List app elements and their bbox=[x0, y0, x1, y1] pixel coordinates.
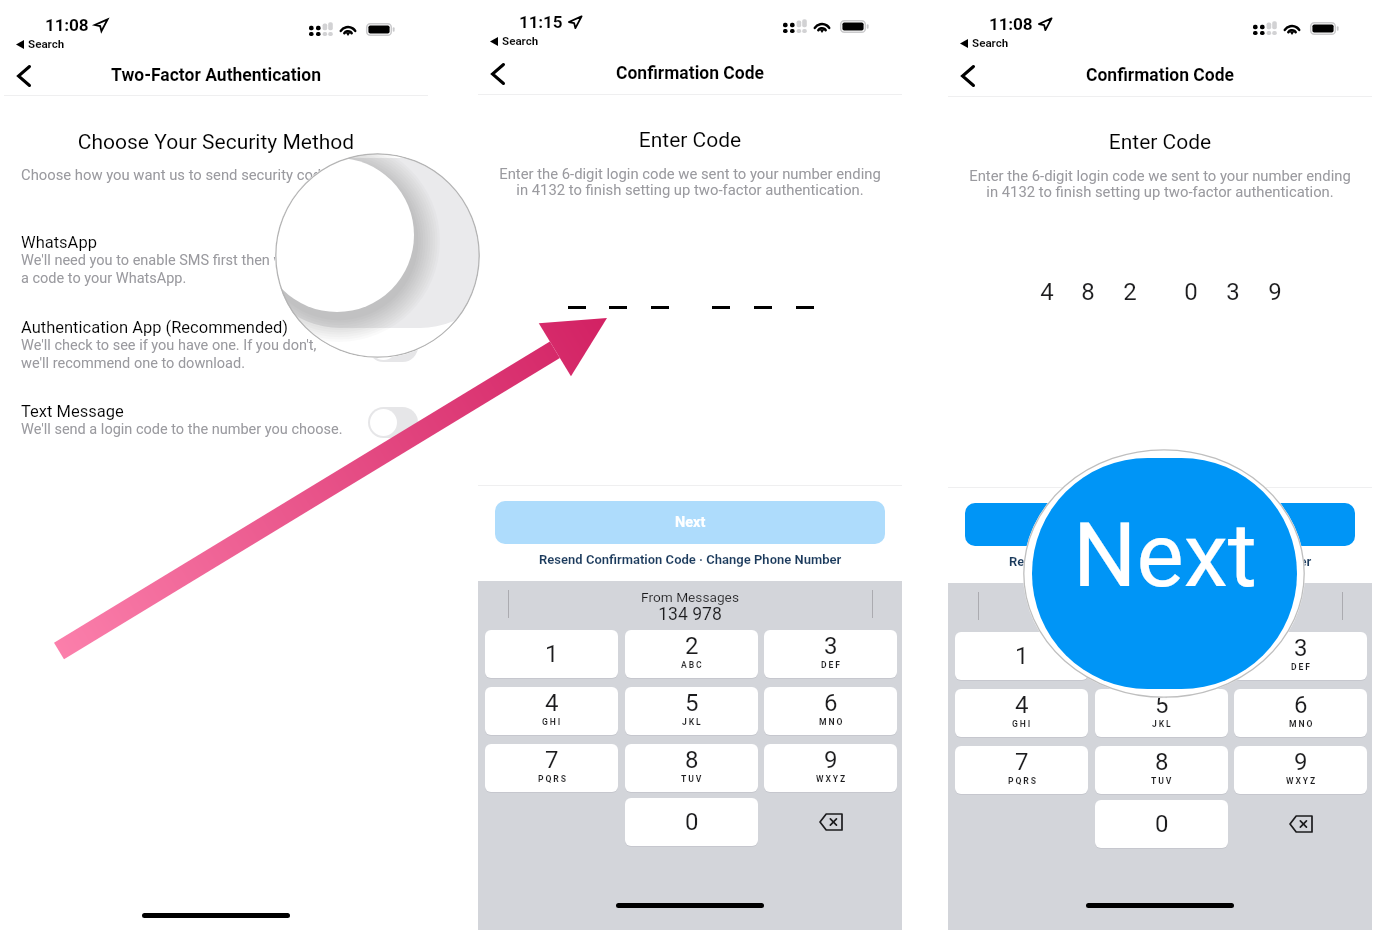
button[interactable]: 8 bbox=[1095, 746, 1228, 794]
staticText: Two-Factor Authentication bbox=[26, 65, 406, 86]
button[interactable]: Back bbox=[6, 58, 42, 94]
staticText: TUV bbox=[1151, 776, 1174, 786]
button[interactable]: 6 bbox=[1234, 689, 1367, 737]
staticText: MNO bbox=[819, 717, 845, 727]
staticText: Resend Confirmation Code · Change Phone … bbox=[539, 552, 842, 567]
staticText: 2 bbox=[1110, 278, 1150, 306]
button[interactable]: Back bbox=[480, 56, 516, 92]
staticText: 3 bbox=[1294, 634, 1308, 662]
staticText: 7 bbox=[1015, 748, 1029, 776]
button[interactable]: 0 bbox=[1095, 800, 1228, 848]
button[interactable]: Resend Confirmation Code · Change Phone … bbox=[960, 554, 1360, 569]
button[interactable]: 4 bbox=[955, 689, 1088, 737]
button[interactable]: WhatsApp bbox=[4, 229, 428, 290]
staticText: 5 bbox=[1155, 691, 1169, 719]
button[interactable]: 1 bbox=[955, 632, 1088, 680]
button[interactable]: 4 bbox=[485, 687, 618, 735]
staticText: DEF bbox=[1291, 662, 1312, 672]
button[interactable]: Toggle off bbox=[368, 407, 418, 438]
button[interactable]: 2 bbox=[1095, 632, 1228, 680]
staticText: 6 bbox=[824, 689, 838, 717]
staticText: 9 bbox=[824, 746, 838, 774]
staticText: 3 bbox=[1213, 278, 1253, 306]
staticText: Choose Your Security Method bbox=[6, 130, 426, 155]
button[interactable]: 9 bbox=[764, 744, 897, 792]
button[interactable]: Delete bbox=[764, 798, 897, 846]
staticText: 3 bbox=[824, 632, 838, 660]
staticText: We'll need you to enable SMS first then … bbox=[21, 252, 337, 286]
button[interactable]: Next bbox=[1032, 458, 1297, 689]
button[interactable]: Next bbox=[495, 501, 885, 544]
staticText: 4 bbox=[1015, 691, 1029, 719]
button[interactable]: Resend Confirmation Code · Change Phone … bbox=[490, 552, 890, 567]
button[interactable]: 5 bbox=[625, 687, 758, 735]
staticText: 8 bbox=[1068, 278, 1108, 306]
button[interactable]: Delete bbox=[1234, 800, 1367, 848]
staticText: WXYZ bbox=[816, 774, 848, 784]
staticText: 0 bbox=[1155, 810, 1169, 838]
staticText: Enter the 6-digit login code we sent to … bbox=[478, 165, 902, 198]
staticText: WXYZ bbox=[1286, 776, 1318, 786]
button[interactable]: 1 bbox=[485, 630, 618, 678]
staticText: 5 bbox=[685, 689, 699, 717]
button[interactable]: 5 bbox=[1095, 689, 1228, 737]
button[interactable]: Back bbox=[950, 58, 986, 94]
staticText: Authentication App (Recommended) bbox=[21, 318, 289, 337]
button[interactable]: 2 bbox=[625, 630, 758, 678]
staticText: Search bbox=[502, 34, 539, 48]
button[interactable]: 3 bbox=[1234, 632, 1367, 680]
staticText: 8 bbox=[685, 746, 699, 774]
button[interactable]: Toggle off bbox=[368, 331, 418, 362]
staticText: Confirmation Code bbox=[500, 63, 880, 84]
staticText: GHI bbox=[542, 717, 563, 727]
button[interactable]: Authentication App (Recommended) bbox=[4, 314, 428, 375]
staticText: 7 bbox=[545, 746, 559, 774]
button[interactable]: 7 bbox=[485, 744, 618, 792]
staticText: JKL bbox=[1152, 719, 1173, 729]
staticText: Choose how you want us to send security … bbox=[21, 166, 341, 183]
staticText: Resend Confirmation Code · Change Phone … bbox=[1009, 554, 1312, 569]
button[interactable]: 3 bbox=[764, 630, 897, 678]
staticText: 11:08 bbox=[45, 15, 89, 35]
staticText: Text Message bbox=[21, 402, 124, 421]
staticText: Search bbox=[28, 37, 65, 51]
staticText: 8 bbox=[1155, 748, 1169, 776]
staticText: JKL bbox=[682, 717, 703, 727]
staticText: 9 bbox=[1294, 748, 1308, 776]
staticText: Enter Code bbox=[950, 130, 1370, 155]
button[interactable]: 7 bbox=[955, 746, 1088, 794]
staticText: ABC bbox=[681, 660, 704, 670]
staticText: MNO bbox=[1289, 719, 1315, 729]
staticText: 6 bbox=[1294, 691, 1308, 719]
staticText: 1 bbox=[1015, 642, 1029, 670]
button[interactable]: 0 bbox=[625, 798, 758, 846]
staticText: 11:08 bbox=[989, 14, 1033, 34]
staticText: 0 bbox=[1171, 278, 1211, 306]
staticText: 4 bbox=[1027, 278, 1067, 306]
staticText: From Messages bbox=[540, 589, 840, 605]
staticText: Confirmation Code bbox=[970, 65, 1350, 86]
staticText: 2 bbox=[685, 632, 699, 660]
button[interactable]: Text Message bbox=[4, 398, 428, 442]
staticText: Search bbox=[972, 36, 1009, 50]
staticText: GHI bbox=[1012, 719, 1033, 729]
staticText: We'll send a login code to the number yo… bbox=[21, 421, 343, 438]
staticText: 4 bbox=[545, 689, 559, 717]
staticText: TUV bbox=[681, 774, 704, 784]
staticText: We'll check to see if you have one. If y… bbox=[21, 337, 317, 371]
staticText: 11:15 bbox=[519, 12, 563, 32]
button[interactable]: 9 bbox=[1234, 746, 1367, 794]
staticText: Next bbox=[1073, 503, 1257, 607]
staticText: Next bbox=[675, 514, 706, 531]
staticText: 0 bbox=[685, 808, 699, 836]
staticText: 134 978 bbox=[540, 604, 840, 625]
staticText: 1 bbox=[545, 640, 559, 668]
button[interactable]: Next bbox=[965, 503, 1355, 546]
button[interactable]: 6 bbox=[764, 687, 897, 735]
button[interactable]: 8 bbox=[625, 744, 758, 792]
button[interactable]: Toggle off bbox=[368, 246, 418, 277]
staticText: From Messages bbox=[1010, 591, 1310, 607]
